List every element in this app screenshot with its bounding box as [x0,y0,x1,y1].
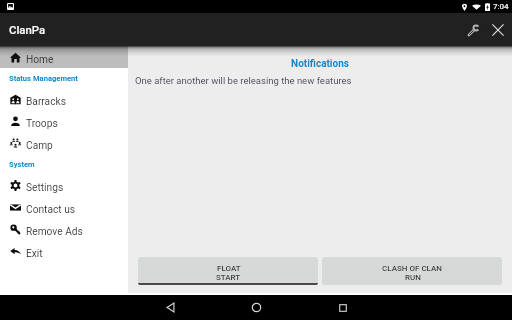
staticText: Settings [26,182,64,194]
staticText: Camp [26,140,53,152]
staticText: START [216,273,241,282]
staticText: FLOAT [217,264,241,273]
staticText: One after another will be releasing the … [135,75,352,86]
button[interactable]: Settings [0,174,128,196]
staticText: Status Management [9,74,78,83]
button[interactable]: Home [0,46,128,68]
button[interactable]: Close [486,18,510,42]
button[interactable]: Camp [0,132,128,154]
button[interactable]: Home [244,295,269,320]
button[interactable]: FLOAT [138,257,318,285]
staticText: Remove Ads [26,226,83,238]
button[interactable]: Contact us [0,196,128,218]
button[interactable]: Settings [461,18,485,42]
staticText: 7:04 [493,2,509,11]
staticText: Home [26,54,54,66]
staticText: Notifications [128,58,512,70]
staticText: CLASH OF CLAN [382,264,443,273]
staticText: Barracks [26,96,66,108]
button[interactable]: Troops [0,110,128,132]
button[interactable]: Back [158,295,183,320]
button[interactable]: Remove Ads [0,218,128,240]
staticText: RUN [405,273,421,282]
staticText: Contact us [26,204,76,216]
staticText: System [9,160,35,169]
staticText: Troops [26,118,58,130]
staticText: Exit [26,248,43,260]
button[interactable]: Barracks [0,88,128,110]
button[interactable]: Exit [0,240,128,262]
button[interactable]: Recents [330,295,355,320]
staticText: ClanPa [9,23,46,36]
button[interactable]: CLASH OF CLAN [322,257,502,285]
